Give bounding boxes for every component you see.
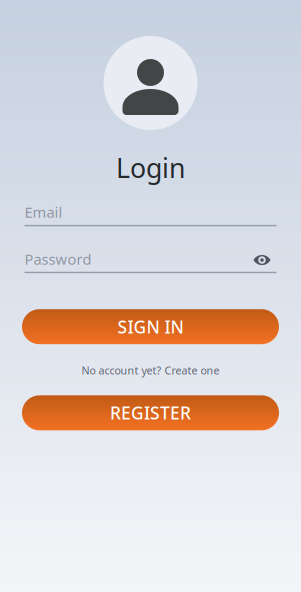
staticText: No account yet? Create one [81,363,219,377]
staticText: Email [24,202,62,222]
staticText: SIGN IN [117,315,183,338]
staticText: Login [116,150,185,185]
staticText: REGISTER [110,401,191,424]
button[interactable]: Show password [253,253,270,265]
button[interactable]: REGISTER [22,395,279,430]
button[interactable]: No account yet? Create one [81,363,219,377]
staticText: Password [24,249,91,269]
button[interactable]: SIGN IN [22,309,279,344]
